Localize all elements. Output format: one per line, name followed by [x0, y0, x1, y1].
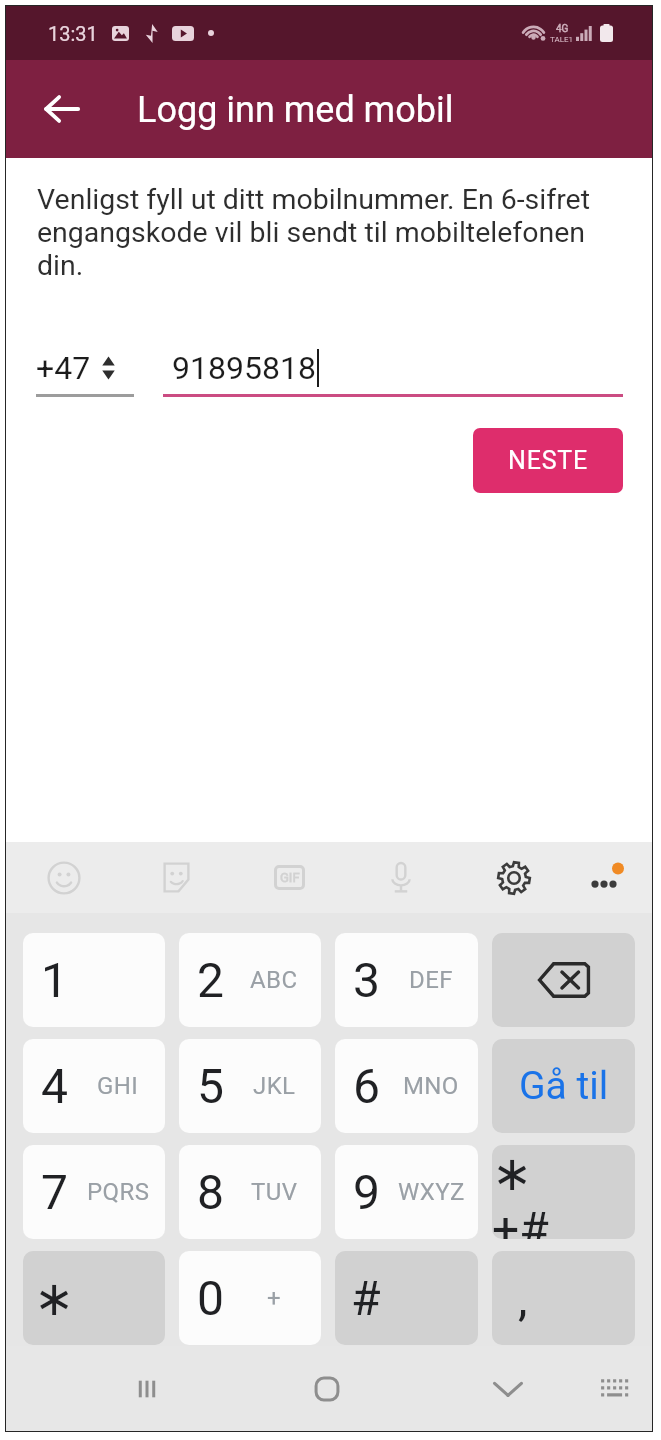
staticText: JKL	[253, 1072, 296, 1100]
staticText: 6	[353, 1058, 380, 1114]
button[interactable]: 1	[23, 933, 165, 1027]
button[interactable]: 4	[23, 1039, 165, 1133]
button[interactable]: More options	[573, 842, 641, 913]
staticText: MNO	[403, 1072, 459, 1100]
staticText: GIF	[280, 870, 300, 885]
staticText: 13:31	[48, 22, 98, 45]
button[interactable]: 7	[23, 1145, 165, 1239]
staticText: GHI	[97, 1072, 139, 1100]
button[interactable]: 3	[335, 933, 478, 1027]
staticText: Gå til	[519, 1063, 609, 1109]
staticText: 0	[197, 1270, 224, 1326]
button[interactable]: +47	[36, 342, 136, 394]
staticText: Logg inn med mobil	[137, 89, 454, 131]
button[interactable]: 9	[335, 1145, 478, 1239]
button[interactable]: Recent apps	[111, 1346, 183, 1431]
button[interactable]: Stickers	[142, 842, 210, 913]
button[interactable]: ∗	[23, 1251, 165, 1345]
button[interactable]: Settings	[480, 842, 548, 913]
staticText: 91895818	[172, 349, 316, 387]
button[interactable]: NESTE	[473, 428, 623, 493]
staticText: ABC	[250, 966, 298, 994]
button[interactable]: Emoji	[30, 842, 98, 913]
staticText: 8	[197, 1164, 224, 1220]
staticText: Venligst fyll ut ditt mobilnummer. En 6-…	[37, 183, 607, 282]
button[interactable]: 91895818	[163, 342, 623, 394]
button[interactable]: Switch keyboard	[579, 1346, 651, 1431]
button[interactable]: 0	[179, 1251, 321, 1345]
button[interactable]: 6	[335, 1039, 478, 1133]
button[interactable]: Gå til	[492, 1039, 635, 1133]
button[interactable]: #	[335, 1251, 478, 1345]
staticText: ∗+#	[492, 1145, 554, 1239]
button[interactable]: Voice input	[367, 842, 435, 913]
staticText: 1	[41, 952, 68, 1008]
button[interactable]: Home	[291, 1346, 363, 1431]
staticText: NESTE	[508, 446, 589, 475]
button[interactable]: GIF	[255, 842, 323, 913]
button[interactable]: ∗+#	[492, 1145, 635, 1239]
staticText: +47	[36, 349, 91, 387]
staticText: ,	[518, 1270, 528, 1326]
staticText: 4G	[556, 23, 569, 35]
staticText: PQRS	[87, 1178, 150, 1206]
staticText: 7	[41, 1164, 68, 1220]
staticText: +	[267, 1284, 282, 1312]
staticText: 3	[353, 952, 380, 1008]
button[interactable]: Backspace	[492, 933, 635, 1027]
staticText: 5	[197, 1058, 224, 1114]
staticText: DEF	[409, 966, 453, 994]
staticText: 4	[41, 1058, 68, 1114]
button[interactable]: 2	[179, 933, 321, 1027]
button[interactable]: Back	[22, 60, 102, 158]
button[interactable]: 5	[179, 1039, 321, 1133]
button[interactable]: ,	[492, 1251, 635, 1345]
button[interactable]: 8	[179, 1145, 321, 1239]
button[interactable]: Hide keyboard	[472, 1346, 544, 1431]
staticText: ∗	[34, 1270, 75, 1326]
staticText: 9	[353, 1164, 380, 1220]
staticText: WXYZ	[398, 1178, 465, 1206]
staticText: 2	[197, 952, 224, 1008]
staticText: TALE1	[550, 35, 574, 44]
staticText: TUV	[251, 1178, 298, 1206]
staticText: #	[351, 1270, 381, 1326]
